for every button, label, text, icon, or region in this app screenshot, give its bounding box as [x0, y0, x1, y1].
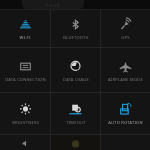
button[interactable]: TIMEOUT	[51, 93, 100, 134]
staticText: DATA CONNECTION	[5, 77, 46, 82]
staticText: GPS	[121, 35, 130, 40]
button[interactable]	[51, 135, 100, 150]
staticText: DATA USAGE	[63, 77, 89, 82]
button[interactable]: WI-FI	[0, 10, 50, 47]
button[interactable]: AUTO ROTATION	[101, 93, 150, 134]
button[interactable]	[0, 135, 50, 150]
staticText: BLUETOOTH	[63, 35, 89, 40]
staticText: WI-FI	[19, 35, 31, 40]
button[interactable]: GPS	[101, 10, 150, 47]
button[interactable]: AIRPLANE MODE	[101, 48, 150, 92]
staticText: TIMEOUT	[66, 120, 86, 125]
button[interactable]: BLUETOOTH	[51, 10, 100, 47]
button[interactable]: OTHER	[22, 0, 84, 10]
staticText: AIRPLANE MODE	[108, 77, 143, 82]
staticText: OTHER	[45, 3, 61, 8]
staticText: BRIGHTNESS	[12, 120, 39, 125]
button[interactable]: BRIGHTNESS	[0, 93, 50, 134]
button[interactable]: DATA USAGE	[51, 48, 100, 92]
button[interactable]: DATA CONNECTION	[0, 48, 50, 92]
staticText: AUTO ROTATION	[108, 120, 143, 125]
